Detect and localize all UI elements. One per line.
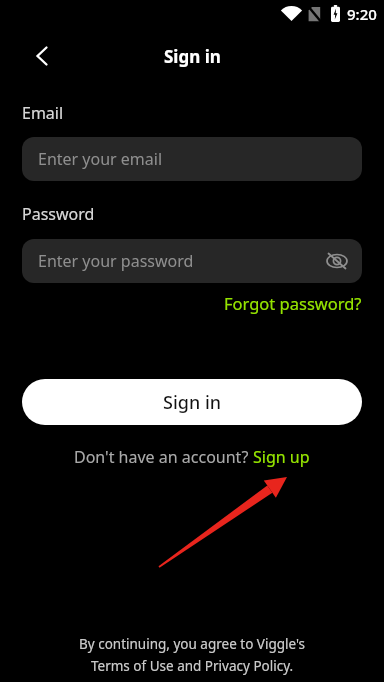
staticText: Enter your password: [38, 250, 194, 272]
staticText: Terms of Use and Privacy Policy.: [91, 657, 294, 675]
button[interactable]: Sign up: [253, 446, 310, 468]
button[interactable]: [22, 36, 62, 76]
button[interactable]: Sign in: [22, 379, 362, 425]
staticText: Don't have an account?: [74, 446, 253, 468]
staticText: Email: [22, 102, 64, 124]
button[interactable]: Forgot password?: [224, 292, 362, 314]
staticText: Sign in: [164, 45, 221, 68]
staticText: Enter your email: [38, 148, 163, 170]
button[interactable]: Enter your password: [22, 239, 362, 283]
staticText: Sign in: [163, 390, 222, 415]
button[interactable]: Enter your email: [22, 137, 362, 181]
staticText: Password: [22, 203, 95, 225]
staticText: By continuing, you agree to Viggle's: [79, 635, 306, 653]
staticText: 9:20: [347, 4, 377, 24]
